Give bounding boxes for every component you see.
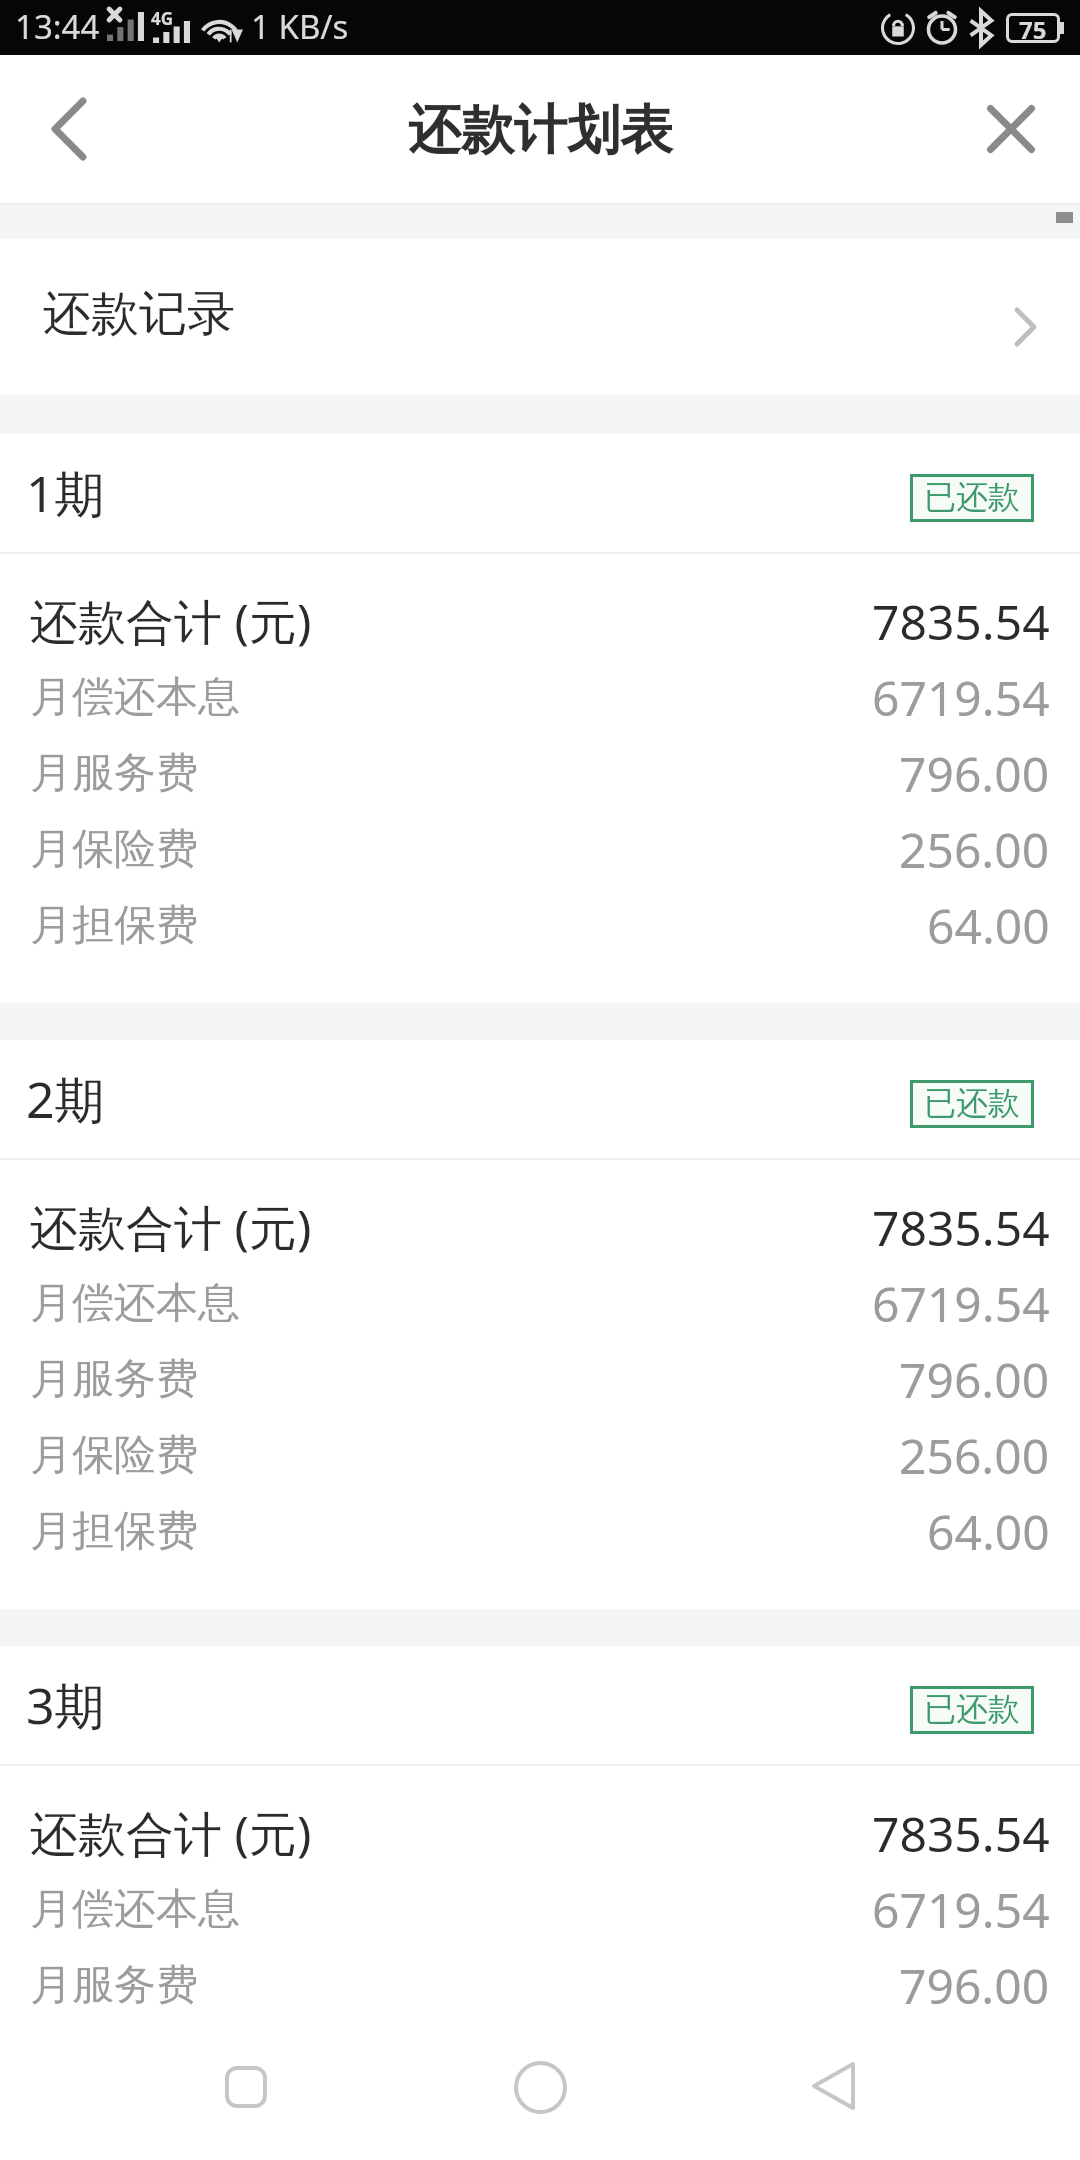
button[interactable]: 2期 [0, 1040, 1080, 1158]
staticText: 还款记录 [43, 284, 235, 344]
staticText: 月服务费 [30, 1959, 198, 2012]
button[interactable]: Close [940, 55, 1080, 203]
staticText: 796.00 [899, 741, 1050, 806]
staticText: 7835.54 [872, 589, 1050, 654]
staticText: 还款合计 (元) [30, 1194, 312, 1260]
button[interactable]: Recent apps [171, 2010, 321, 2160]
staticText: 2期 [26, 1065, 105, 1133]
staticText: 已还款 [924, 477, 1020, 517]
staticText: 256.00 [899, 817, 1050, 882]
staticText: 1期 [26, 459, 105, 527]
staticText: 7835.54 [872, 1801, 1050, 1866]
staticText: 75 [1019, 13, 1047, 43]
staticText: 6719.54 [872, 1271, 1050, 1336]
staticText: 月服务费 [30, 1353, 198, 1406]
staticText: 月偿还本息 [30, 1277, 240, 1330]
staticText: 3期 [26, 1671, 105, 1739]
staticText: 7835.54 [872, 1195, 1050, 1260]
staticText: 月服务费 [30, 747, 198, 800]
staticText: 还款计划表 [408, 97, 673, 164]
staticText: 13:44 [15, 4, 100, 49]
staticText: 64.00 [927, 893, 1050, 958]
staticText: 1 KB/s [251, 4, 349, 49]
staticText: 已还款 [924, 1083, 1020, 1123]
staticText: 还款合计 (元) [30, 1800, 312, 1866]
staticText: 还款合计 (元) [30, 588, 312, 654]
staticText: 月担保费 [30, 1505, 198, 1558]
button[interactable]: 还款记录 [0, 239, 1080, 395]
button[interactable]: 1期 [0, 434, 1080, 552]
staticText: 256.00 [899, 1423, 1050, 1488]
button[interactable]: Back [758, 2010, 908, 2160]
button[interactable]: Home [465, 2012, 615, 2160]
staticText: 796.00 [899, 1347, 1050, 1412]
staticText: 64.00 [927, 1499, 1050, 1564]
button[interactable]: 3期 [0, 1646, 1080, 1764]
staticText: 月偿还本息 [30, 1883, 240, 1936]
staticText: 月保险费 [30, 1429, 198, 1482]
button[interactable]: Back [0, 55, 140, 203]
staticText: 4G [151, 7, 174, 30]
staticText: 6719.54 [872, 665, 1050, 730]
staticText: 月偿还本息 [30, 671, 240, 724]
staticText: 6719.54 [872, 1877, 1050, 1942]
staticText: 月担保费 [30, 899, 198, 952]
staticText: 月保险费 [30, 823, 198, 876]
staticText: 已还款 [924, 1689, 1020, 1729]
staticText: 796.00 [899, 1953, 1050, 2018]
